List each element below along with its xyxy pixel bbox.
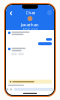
- button[interactable]: Info: [47, 10, 52, 15]
- button[interactable]: Back: [8, 10, 14, 16]
- staticText: Active now: [22, 27, 37, 31]
- staticText: Jonathan: [21, 22, 39, 27]
- staticText: ‹: [9, 7, 12, 18]
- staticText: Chat: [25, 10, 35, 15]
